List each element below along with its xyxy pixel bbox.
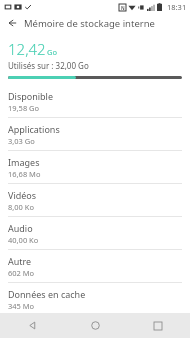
staticText: Vidéos: [8, 189, 37, 201]
staticText: 16,68 Mo: [8, 169, 41, 179]
staticText: Images: [8, 156, 40, 168]
staticText: Utilisés sur : 32,00 Go: [8, 60, 89, 71]
staticText: 40,00 Ko: [8, 235, 39, 245]
button[interactable]: Données en cache: [0, 283, 190, 313]
staticText: 3,03 Go: [8, 136, 35, 146]
staticText: 12,42: [8, 39, 46, 59]
button[interactable]: Applications: [0, 118, 190, 150]
staticText: Go: [47, 47, 57, 57]
button[interactable]: Vidéos: [0, 184, 190, 216]
button[interactable]: Back: [0, 13, 24, 33]
staticText: 8,00 Ko: [8, 202, 35, 212]
button[interactable]: Audio: [0, 217, 190, 249]
button[interactable]: Disponible: [0, 85, 190, 117]
staticText: Données en cache: [8, 288, 86, 300]
staticText: 345 Mo: [8, 301, 35, 309]
staticText: 602 Mo: [8, 268, 35, 278]
button[interactable]: Home: [75, 313, 115, 338]
staticText: 18:31: [167, 2, 187, 12]
staticText: 19,58 Go: [8, 103, 40, 113]
staticText: Applications: [8, 123, 60, 135]
staticText: Disponible: [8, 90, 54, 102]
staticText: Audio: [8, 222, 33, 234]
staticText: N: [121, 5, 125, 11]
staticText: Autre: [8, 255, 32, 267]
staticText: Mémoire de stockage interne: [24, 17, 155, 30]
button[interactable]: Recent apps: [138, 313, 178, 338]
button[interactable]: Images: [0, 151, 190, 183]
button[interactable]: Autre: [0, 250, 190, 282]
button[interactable]: Back: [12, 313, 52, 338]
